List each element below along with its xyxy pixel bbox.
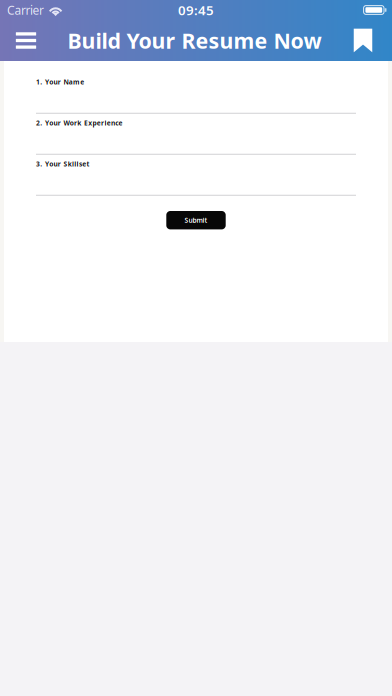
staticText: Carrier: [7, 2, 44, 18]
staticText: 2. Your Work Experience: [36, 118, 123, 127]
staticText: 09:45: [178, 1, 214, 19]
staticText: 1. Your Name: [36, 77, 84, 86]
staticText: Submit: [184, 216, 207, 225]
button[interactable]: Bookmark: [342, 19, 384, 61]
staticText: 3. Your Skillset: [36, 159, 89, 168]
staticText: Build Your Resume Now: [67, 26, 321, 55]
button[interactable]: Submit: [166, 211, 226, 229]
button[interactable]: Menu: [5, 19, 47, 61]
